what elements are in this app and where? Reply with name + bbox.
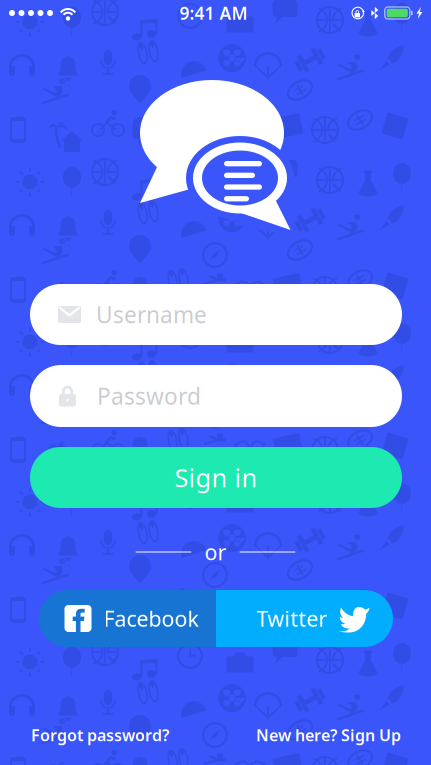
staticText: Password bbox=[97, 381, 201, 411]
button[interactable]: Forgot password? bbox=[31, 723, 206, 747]
staticText: Facebook bbox=[103, 604, 198, 633]
button[interactable]: Password bbox=[30, 365, 402, 427]
staticText: Username bbox=[96, 299, 207, 329]
staticText: Forgot password? bbox=[31, 724, 169, 746]
staticText: Sign in bbox=[174, 461, 257, 494]
button[interactable]: New here? Sign Up bbox=[216, 723, 401, 747]
button[interactable]: Twitter bbox=[216, 590, 393, 647]
button[interactable]: Sign in bbox=[30, 447, 402, 508]
staticText: New here? Sign Up bbox=[256, 724, 401, 746]
button[interactable]: Facebook bbox=[39, 590, 216, 647]
staticText: Twitter bbox=[256, 604, 327, 633]
staticText: 9:41 AM bbox=[179, 1, 247, 24]
button[interactable]: Username bbox=[30, 284, 402, 345]
staticText: or bbox=[204, 538, 226, 566]
